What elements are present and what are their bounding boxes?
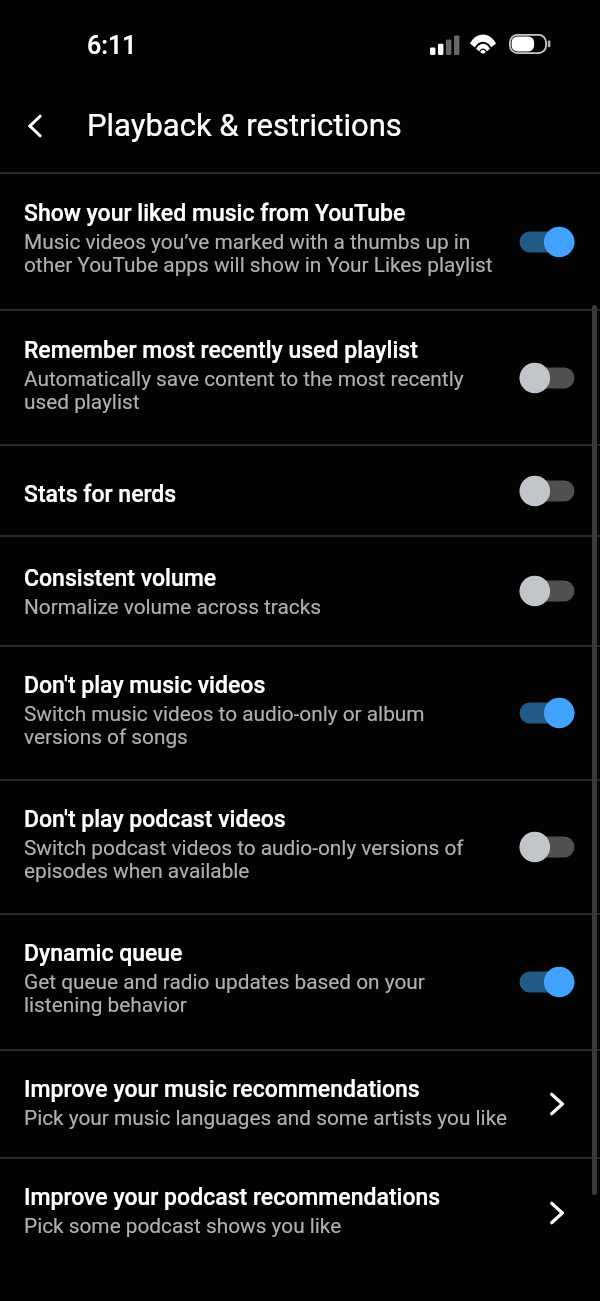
button[interactable]: On xyxy=(516,222,578,262)
button[interactable]: Improve your music recommendations xyxy=(0,1051,600,1157)
staticText: 6:11 xyxy=(87,31,137,61)
staticText: Consistent volume xyxy=(24,565,217,592)
button[interactable]: Open xyxy=(530,1080,578,1128)
button[interactable]: Open xyxy=(530,1189,578,1237)
button[interactable]: Dynamic queue xyxy=(0,915,600,1049)
button[interactable]: Stats for nerds xyxy=(0,446,600,535)
staticText: Switch podcast videos to audio-only vers… xyxy=(24,836,464,882)
button[interactable]: Back xyxy=(11,102,59,150)
staticText: Show your liked music from YouTube xyxy=(24,200,406,227)
button[interactable]: Off xyxy=(516,571,578,611)
button[interactable]: Don't play music videos xyxy=(0,647,600,779)
button[interactable]: On xyxy=(516,962,578,1002)
button[interactable]: Show your liked music from YouTube xyxy=(0,174,600,309)
staticText: Improve your music recommendations xyxy=(24,1076,420,1103)
staticText: Don't play music videos xyxy=(24,672,266,699)
staticText: Pick some podcast shows you like xyxy=(24,1214,342,1237)
staticText: Improve your podcast recommendations xyxy=(24,1184,441,1211)
staticText: Automatically save content to the most r… xyxy=(24,367,464,413)
button[interactable]: Off xyxy=(516,358,578,398)
staticText: Dynamic queue xyxy=(24,940,183,967)
staticText: Normalize volume across tracks xyxy=(24,595,321,618)
staticText: Don't play podcast videos xyxy=(24,806,286,833)
button[interactable]: On xyxy=(516,693,578,733)
staticText: Pick your music languages and some artis… xyxy=(24,1106,508,1129)
staticText: Music videos you’ve marked with a thumbs… xyxy=(24,230,493,276)
button[interactable]: Off xyxy=(516,827,578,867)
button[interactable]: Off xyxy=(516,471,578,511)
button[interactable]: Don't play podcast videos xyxy=(0,781,600,913)
staticText: Stats for nerds xyxy=(24,481,177,508)
staticText: Playback & restrictions xyxy=(87,107,402,143)
button[interactable]: Consistent volume xyxy=(0,537,600,645)
button[interactable]: Remember most recently used playlist xyxy=(0,311,600,444)
staticText: Get queue and radio updates based on you… xyxy=(24,970,425,1016)
button[interactable]: Improve your podcast recommendations xyxy=(0,1159,600,1266)
staticText: Remember most recently used playlist xyxy=(24,337,418,364)
staticText: Switch music videos to audio-only or alb… xyxy=(24,702,425,748)
